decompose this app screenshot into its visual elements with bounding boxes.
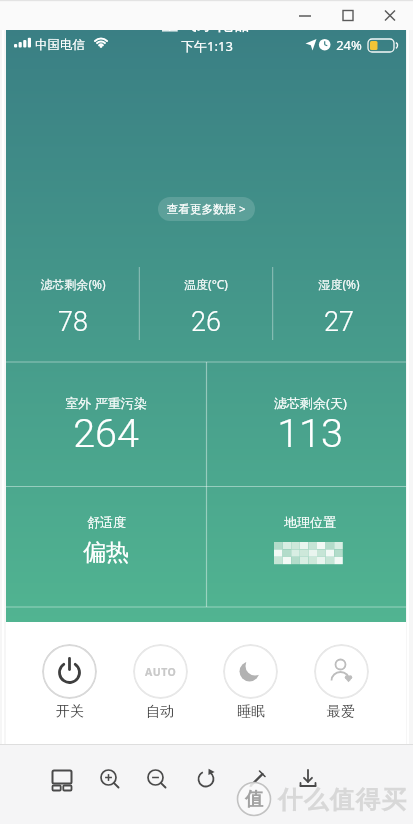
button[interactable] [137, 759, 177, 799]
button[interactable] [314, 644, 369, 699]
staticText: 26 [191, 306, 221, 338]
staticText: 什么值得买 [277, 784, 407, 815]
staticText: 湿度(%) [318, 276, 360, 292]
staticText: 值 [245, 788, 263, 811]
staticText: 113 [277, 410, 343, 456]
button[interactable] [90, 759, 130, 799]
staticText: 下午1:13 [181, 37, 233, 55]
staticText: 264 [73, 410, 139, 456]
staticText: 睡眠 [237, 703, 265, 721]
staticText: AUTO [145, 665, 177, 679]
button[interactable] [223, 644, 278, 699]
staticText: 偏热 [83, 538, 129, 567]
staticText: 24% [336, 36, 362, 54]
staticText: 开关 [56, 703, 84, 721]
staticText: 空气净化器 [161, 30, 251, 36]
staticText: 滤芯剩余(天) [274, 394, 347, 412]
button[interactable] [42, 644, 97, 699]
staticText: 室外 严重污染 [65, 394, 147, 412]
button[interactable] [237, 759, 277, 799]
staticText: 温度(°C) [184, 276, 228, 292]
staticText: 自动 [146, 703, 174, 721]
staticText: 27 [324, 306, 354, 338]
button[interactable] [42, 759, 82, 799]
button[interactable]: 查看更多数据 > [158, 197, 255, 221]
staticText: 舒适度 [87, 514, 126, 530]
button[interactable] [288, 759, 328, 799]
button[interactable]: AUTO [133, 644, 188, 699]
staticText: 中国电信 [35, 37, 85, 53]
staticText: 查看更多数据 > [167, 201, 246, 217]
staticText: 最爱 [327, 703, 355, 721]
staticText: 滤芯剩余(%) [40, 276, 106, 292]
staticText: 78 [58, 306, 88, 338]
button[interactable] [186, 759, 226, 799]
staticText: 地理位置 [284, 514, 336, 530]
